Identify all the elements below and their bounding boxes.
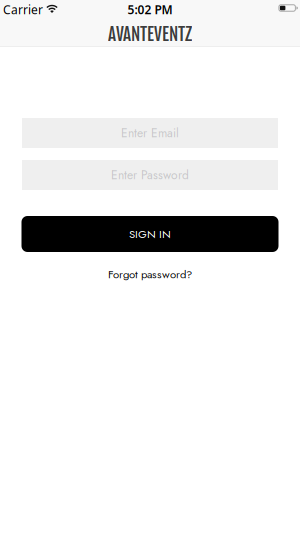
staticText: Carrier bbox=[3, 1, 43, 17]
button[interactable]: Forgot password? bbox=[108, 266, 192, 282]
button[interactable]: SIGN IN bbox=[21, 216, 278, 252]
staticText: Enter Email bbox=[121, 124, 179, 142]
staticText: SIGN IN bbox=[129, 226, 171, 242]
staticText: 5:02 PM bbox=[127, 1, 172, 17]
staticText: AVANTEVENTZ bbox=[108, 24, 192, 45]
staticText: Forgot password? bbox=[108, 266, 192, 282]
button[interactable]: Enter Password bbox=[22, 160, 278, 190]
staticText: Enter Password bbox=[111, 166, 189, 184]
button[interactable]: Enter Email bbox=[22, 118, 278, 148]
